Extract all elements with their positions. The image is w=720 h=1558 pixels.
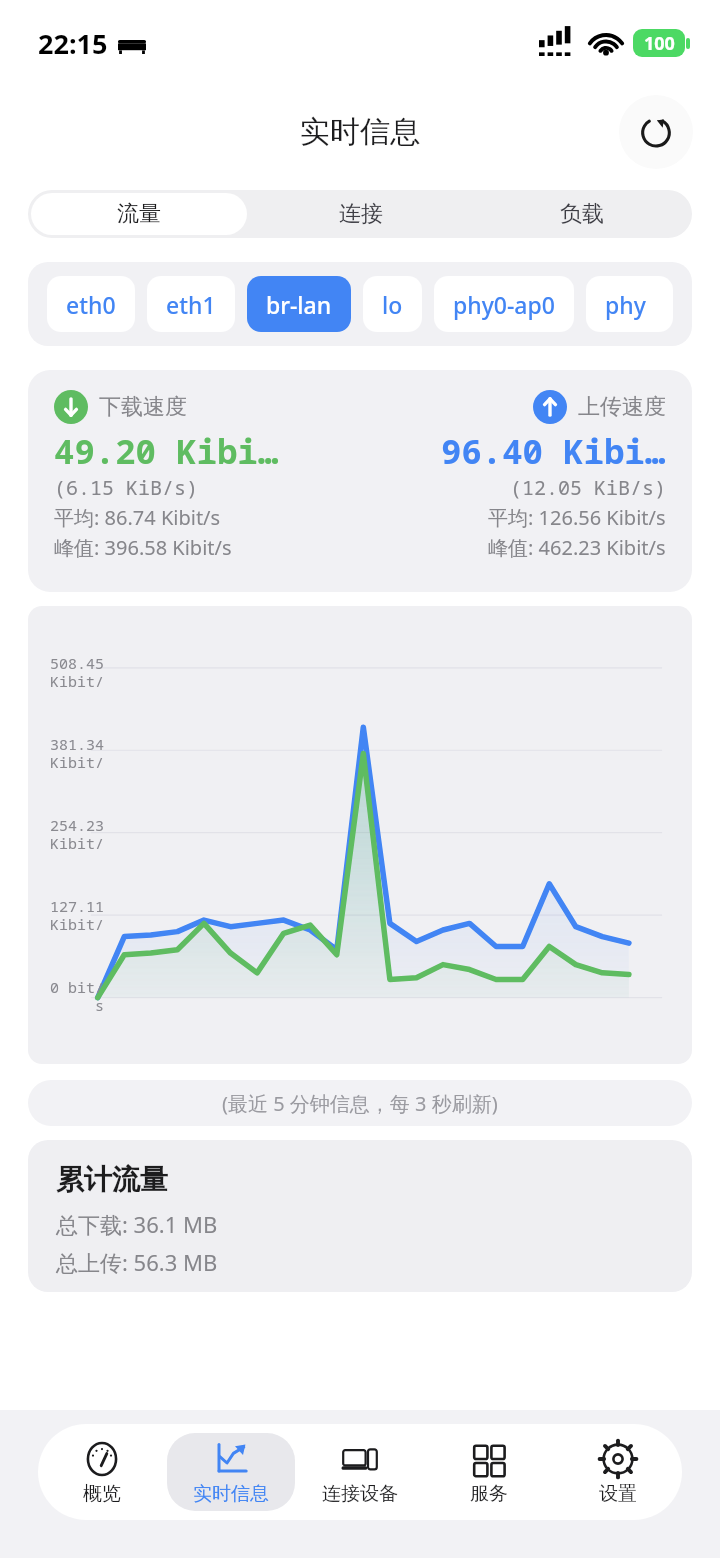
staticText: 22:15 — [38, 25, 108, 62]
staticText: 381.34 Kibit/ — [36, 734, 104, 773]
button[interactable]: br-lan — [247, 276, 351, 332]
button[interactable]: phy0-ap0 — [434, 276, 574, 332]
staticText: 服务 — [470, 1482, 508, 1506]
staticText: 254.23 Kibit/ — [36, 815, 104, 854]
staticText: (12.05 KiB/s) — [510, 474, 666, 501]
staticText: 96.40 Kibi… — [441, 428, 666, 474]
staticText: 设置 — [599, 1482, 637, 1506]
staticText: 连接设备 — [322, 1482, 398, 1506]
staticText: 实时信息 — [193, 1482, 269, 1506]
staticText: eth1 — [166, 289, 216, 320]
button[interactable]: 设置 — [554, 1433, 682, 1511]
staticText: 峰值: 396.58 Kibit/s — [54, 534, 232, 561]
button[interactable]: 连接 — [253, 193, 468, 235]
staticText: (最近 5 分钟信息，每 3 秒刷新) — [222, 1090, 498, 1117]
staticText: (6.15 KiB/s) — [54, 474, 198, 501]
staticText: 总下载: 36.1 MB — [56, 1209, 218, 1239]
staticText: eth0 — [66, 289, 116, 320]
button[interactable]: 流量 — [31, 193, 247, 235]
staticText: 平均: 86.74 Kibit/s — [54, 504, 221, 531]
staticText: phy0-ap0 — [453, 289, 555, 320]
staticText: lo — [382, 289, 403, 320]
button[interactable]: phy1 — [586, 276, 673, 332]
staticText: 上传速度 — [578, 393, 666, 421]
staticText: br-lan — [266, 289, 332, 320]
button[interactable]: 服务 — [425, 1433, 553, 1511]
staticText: 127.11 Kibit/ — [36, 896, 104, 935]
staticText: 0 bit/ s — [36, 977, 104, 1016]
staticText: 峰值: 462.23 Kibit/s — [488, 534, 666, 561]
staticText: phy1 — [605, 289, 654, 320]
button[interactable]: lo — [363, 276, 422, 332]
staticText: 流量 — [117, 200, 161, 228]
button[interactable]: 实时信息 — [167, 1433, 295, 1511]
staticText: 概览 — [83, 1482, 121, 1506]
staticText: 总上传: 56.3 MB — [56, 1247, 218, 1277]
button[interactable]: 负载 — [474, 193, 689, 235]
button[interactable]: eth0 — [47, 276, 135, 332]
staticText: 平均: 126.56 Kibit/s — [488, 504, 666, 531]
staticText: 49.20 Kibi… — [54, 428, 279, 474]
staticText: 连接 — [339, 200, 383, 228]
staticText: 累计流量 — [56, 1162, 168, 1197]
button[interactable]: 刷新 — [619, 95, 693, 169]
staticText: 实时信息 — [300, 113, 420, 151]
staticText: 508.45 Kibit/ — [36, 653, 104, 692]
staticText: 负载 — [560, 200, 604, 228]
button[interactable]: 连接设备 — [296, 1433, 424, 1511]
staticText: 下载速度 — [99, 393, 187, 421]
button[interactable]: 概览 — [38, 1433, 166, 1511]
staticText: 100 — [644, 31, 675, 56]
button[interactable]: eth1 — [147, 276, 235, 332]
